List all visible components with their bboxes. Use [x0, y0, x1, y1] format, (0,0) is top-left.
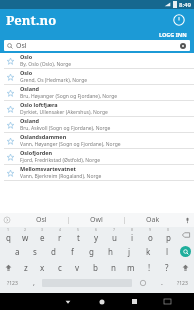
button[interactable]: 0: [159, 227, 177, 243]
staticText: 8: [131, 227, 134, 232]
button[interactable]: Favourite: [4, 87, 16, 99]
button[interactable]: !: [140, 259, 158, 275]
button[interactable]: Favourite: [4, 167, 16, 179]
staticText: Pent.no: [6, 11, 57, 29]
staticText: s: [33, 246, 37, 257]
button[interactable]: Account: [171, 12, 187, 28]
staticText: 6: [95, 227, 98, 232]
staticText: Owl: [90, 215, 103, 225]
button[interactable]: Recent apps: [118, 293, 151, 310]
staticText: Oslo: [20, 69, 33, 76]
button[interactable]: 3: [34, 227, 51, 243]
button[interactable]: Favourite: [4, 119, 16, 131]
staticText: Oslandsdammen: [20, 133, 67, 140]
button[interactable]: Favourite: [4, 103, 16, 115]
button[interactable]: x: [34, 259, 51, 275]
button[interactable]: Favourite: [0, 117, 194, 133]
button[interactable]: Backspace: [177, 227, 194, 243]
button[interactable]: s: [26, 243, 44, 259]
button[interactable]: .: [153, 275, 170, 291]
button[interactable]: Favourite: [0, 101, 194, 117]
button[interactable]: Keyboard: [151, 293, 184, 310]
button[interactable]: d: [44, 243, 63, 259]
button[interactable]: Voice input: [180, 213, 194, 227]
button[interactable]: ?123: [0, 275, 25, 291]
button[interactable]: Favourite: [0, 69, 194, 85]
staticText: ,: [33, 278, 35, 288]
button[interactable]: m: [122, 259, 140, 275]
button[interactable]: 7: [105, 227, 123, 243]
staticText: Grend, Os (Hedmark), Norge: [20, 77, 88, 84]
staticText: !: [148, 262, 151, 273]
button[interactable]: Oak: [125, 213, 180, 227]
button[interactable]: 5: [69, 227, 87, 243]
button[interactable]: Emoji: [132, 275, 153, 291]
button[interactable]: Favourite: [4, 71, 16, 83]
button[interactable]: a: [8, 243, 26, 259]
staticText: ?123: [7, 280, 18, 287]
staticText: Oak: [146, 215, 160, 225]
staticText: d: [51, 246, 56, 257]
staticText: ?123: [177, 280, 188, 287]
button[interactable]: Favourite: [0, 133, 194, 149]
staticText: Osl: [16, 41, 27, 51]
staticText: f: [71, 246, 74, 257]
button[interactable]: h: [101, 243, 120, 259]
button[interactable]: Shift: [176, 259, 194, 275]
staticText: g: [89, 246, 94, 257]
staticText: w: [22, 232, 29, 243]
button[interactable]: Favourite: [0, 85, 194, 101]
staticText: i: [131, 232, 134, 243]
button[interactable]: More suggestions: [0, 213, 14, 227]
button[interactable]: 8: [123, 227, 141, 243]
button[interactable]: 2: [17, 227, 34, 243]
button[interactable]: b: [86, 259, 104, 275]
staticText: o: [148, 232, 153, 243]
button[interactable]: z: [17, 259, 34, 275]
staticText: 4: [59, 227, 62, 232]
staticText: n: [111, 262, 116, 273]
button[interactable]: 9: [141, 227, 159, 243]
button[interactable]: l: [158, 243, 177, 259]
button[interactable]: Search: [177, 243, 194, 259]
button[interactable]: Owl: [69, 213, 124, 227]
button[interactable]: Favourite: [4, 55, 16, 67]
staticText: b: [93, 262, 98, 273]
button[interactable]: g: [82, 243, 101, 259]
button[interactable]: Osl: [4, 40, 190, 51]
button[interactable]: LOGG INN: [0, 30, 194, 39]
staticText: Oslo: [20, 53, 33, 60]
staticText: LOGG INN: [159, 31, 187, 38]
button[interactable]: ,: [25, 275, 42, 291]
button[interactable]: Clear search: [179, 42, 187, 50]
button[interactable]: f: [63, 243, 82, 259]
button[interactable]: 4: [51, 227, 69, 243]
button[interactable]: k: [139, 243, 158, 259]
button[interactable]: j: [120, 243, 139, 259]
button[interactable]: Favourite: [0, 53, 194, 69]
staticText: Bru, Høyanger (Sogn og Fjordane), Norge: [20, 93, 118, 100]
button[interactable]: ?123: [170, 275, 194, 291]
button[interactable]: ?: [158, 259, 176, 275]
button[interactable]: n: [104, 259, 122, 275]
button[interactable]: v: [68, 259, 86, 275]
staticText: z: [24, 262, 28, 273]
staticText: Oslofjorden: [20, 149, 53, 156]
button[interactable]: Home: [85, 293, 118, 310]
staticText: k: [146, 246, 151, 257]
button[interactable]: Favourite: [4, 135, 16, 147]
button[interactable]: Back: [51, 293, 85, 310]
button[interactable]: Shift: [0, 259, 17, 275]
staticText: y: [94, 232, 99, 243]
staticText: h: [108, 246, 113, 257]
button[interactable]: Osl: [14, 213, 68, 227]
button[interactable]: Favourite: [0, 165, 194, 181]
staticText: 9: [149, 227, 152, 232]
button[interactable]: c: [51, 259, 68, 275]
button[interactable]: Favourite: [4, 151, 16, 163]
button[interactable]: 6: [87, 227, 105, 243]
button[interactable]: 1: [0, 227, 17, 243]
staticText: Oslo loftfjæra: [20, 101, 58, 108]
button[interactable]: Favourite: [0, 149, 194, 165]
